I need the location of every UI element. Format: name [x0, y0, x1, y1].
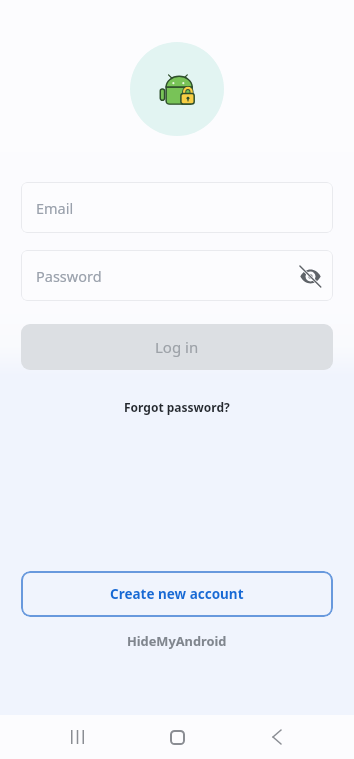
staticText: HideMyAndroid — [127, 632, 227, 649]
button[interactable]: Show password — [299, 265, 321, 287]
button[interactable]: Back — [254, 715, 300, 759]
button[interactable]: Password — [21, 250, 333, 301]
button[interactable]: Create new account — [21, 571, 333, 617]
staticText: Email — [36, 198, 74, 218]
button[interactable]: Log in — [21, 324, 333, 370]
button[interactable]: Email — [21, 182, 333, 233]
button[interactable]: Home — [154, 715, 200, 759]
button[interactable]: Forgot password? — [114, 395, 240, 419]
staticText: Password — [36, 266, 102, 286]
staticText: Forgot password? — [124, 399, 230, 415]
staticText: Log in — [155, 337, 199, 357]
button[interactable]: Recents — [54, 715, 100, 759]
staticText: Create new account — [110, 585, 244, 603]
